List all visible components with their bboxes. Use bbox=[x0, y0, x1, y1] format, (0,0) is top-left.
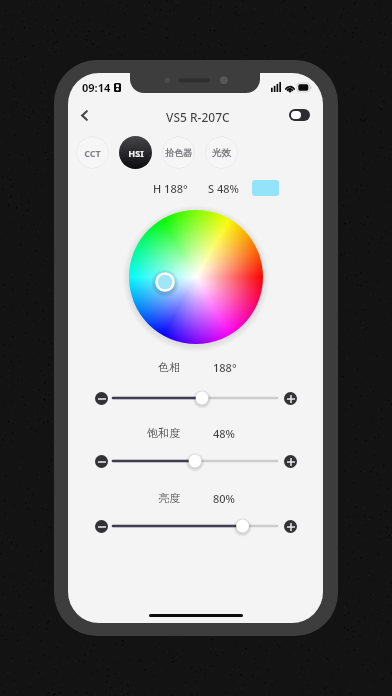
staticText: H 188° bbox=[153, 181, 188, 196]
button[interactable]: Back bbox=[73, 104, 95, 126]
button[interactable]: Increase bbox=[284, 520, 297, 533]
button[interactable] bbox=[106, 452, 284, 470]
staticText: 饱和度 bbox=[147, 426, 180, 440]
button[interactable]: 拾色器 bbox=[162, 136, 195, 169]
button[interactable]: Power toggle bbox=[289, 109, 310, 121]
staticText: 09:14 bbox=[82, 80, 111, 95]
staticText: CCT bbox=[84, 147, 101, 159]
button[interactable]: Decrease bbox=[95, 520, 108, 533]
staticText: 光效 bbox=[212, 147, 231, 159]
staticText: VS5 R-207C bbox=[166, 109, 230, 125]
button[interactable]: 光效 bbox=[205, 136, 238, 169]
staticText: 色相 bbox=[158, 360, 180, 374]
staticText: 48% bbox=[213, 426, 235, 441]
staticText: 188° bbox=[213, 360, 237, 375]
staticText: 80% bbox=[213, 491, 235, 506]
staticText: 亮度 bbox=[158, 491, 180, 505]
button[interactable]: Decrease bbox=[95, 392, 108, 405]
button[interactable] bbox=[106, 389, 284, 407]
staticText: S 48% bbox=[208, 181, 239, 196]
button[interactable]: Increase bbox=[284, 392, 297, 405]
button[interactable]: Increase bbox=[284, 455, 297, 468]
button[interactable]: HSI bbox=[119, 136, 152, 169]
staticText: 拾色器 bbox=[165, 147, 192, 158]
button[interactable]: Decrease bbox=[95, 455, 108, 468]
button[interactable]: Colour selector bbox=[152, 269, 178, 295]
button[interactable] bbox=[106, 517, 284, 535]
staticText: HSI bbox=[128, 147, 144, 159]
button[interactable]: CCT bbox=[76, 136, 109, 169]
